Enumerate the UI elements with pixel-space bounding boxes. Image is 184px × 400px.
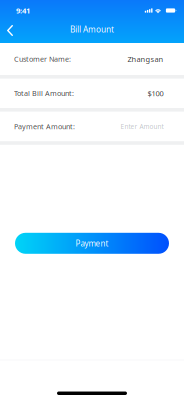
staticText: Enter Amount xyxy=(120,122,163,131)
staticText: $100 xyxy=(147,88,163,98)
staticText: Payment Amount: xyxy=(14,121,75,131)
staticText: Payment xyxy=(75,238,108,249)
button[interactable]: Payment xyxy=(15,233,169,254)
staticText: 9:41 xyxy=(16,5,30,16)
staticText: Zhangsan xyxy=(127,54,163,64)
staticText: Total Bill Amount: xyxy=(14,88,74,98)
button[interactable]: Back xyxy=(0,18,20,43)
staticText: Customer Name: xyxy=(14,54,71,64)
staticText: Bill Amount xyxy=(70,24,114,35)
